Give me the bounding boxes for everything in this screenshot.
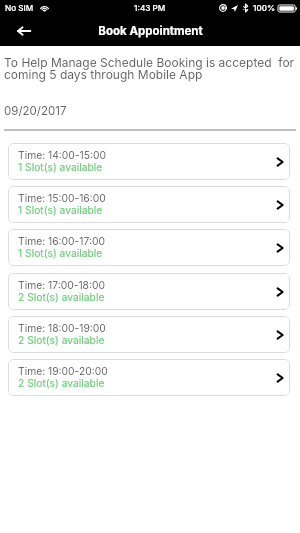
- staticText: Time: 18:00-19:00: [18, 322, 106, 334]
- staticText: 1 Slot(s) available: [18, 247, 103, 259]
- staticText: 09/20/2017: [4, 104, 67, 118]
- staticText: 1 Slot(s) available: [18, 161, 103, 173]
- staticText: 2 Slot(s) available: [18, 377, 105, 389]
- button[interactable]: Time: 18:00-19:00: [8, 316, 290, 353]
- staticText: Time: 19:00-20:00: [18, 365, 108, 377]
- staticText: No SIM: [5, 3, 34, 13]
- button[interactable]: Back: [0, 16, 44, 46]
- staticText: 2 Slot(s) available: [18, 334, 105, 346]
- button[interactable]: Time: 15:00-16:00: [8, 186, 290, 223]
- button[interactable]: Time: 17:00-18:00: [8, 273, 290, 310]
- button[interactable]: Time: 19:00-20:00: [8, 359, 290, 396]
- button[interactable]: Time: 16:00-17:00: [8, 229, 290, 266]
- staticText: 1:43 PM: [134, 3, 166, 13]
- staticText: Book Appointment: [98, 24, 203, 38]
- staticText: 1 Slot(s) available: [18, 204, 103, 216]
- staticText: Time: 14:00-15:00: [18, 149, 106, 161]
- staticText: Time: 16:00-17:00: [18, 235, 105, 247]
- staticText: 100%: [253, 3, 276, 13]
- staticText: Time: 15:00-16:00: [18, 192, 106, 204]
- button[interactable]: Time: 14:00-15:00: [8, 143, 290, 180]
- staticText: Time: 17:00-18:00: [18, 279, 105, 291]
- staticText: 2 Slot(s) available: [18, 291, 105, 303]
- staticText: To Help Manage Schedule Booking is accep…: [4, 55, 296, 82]
